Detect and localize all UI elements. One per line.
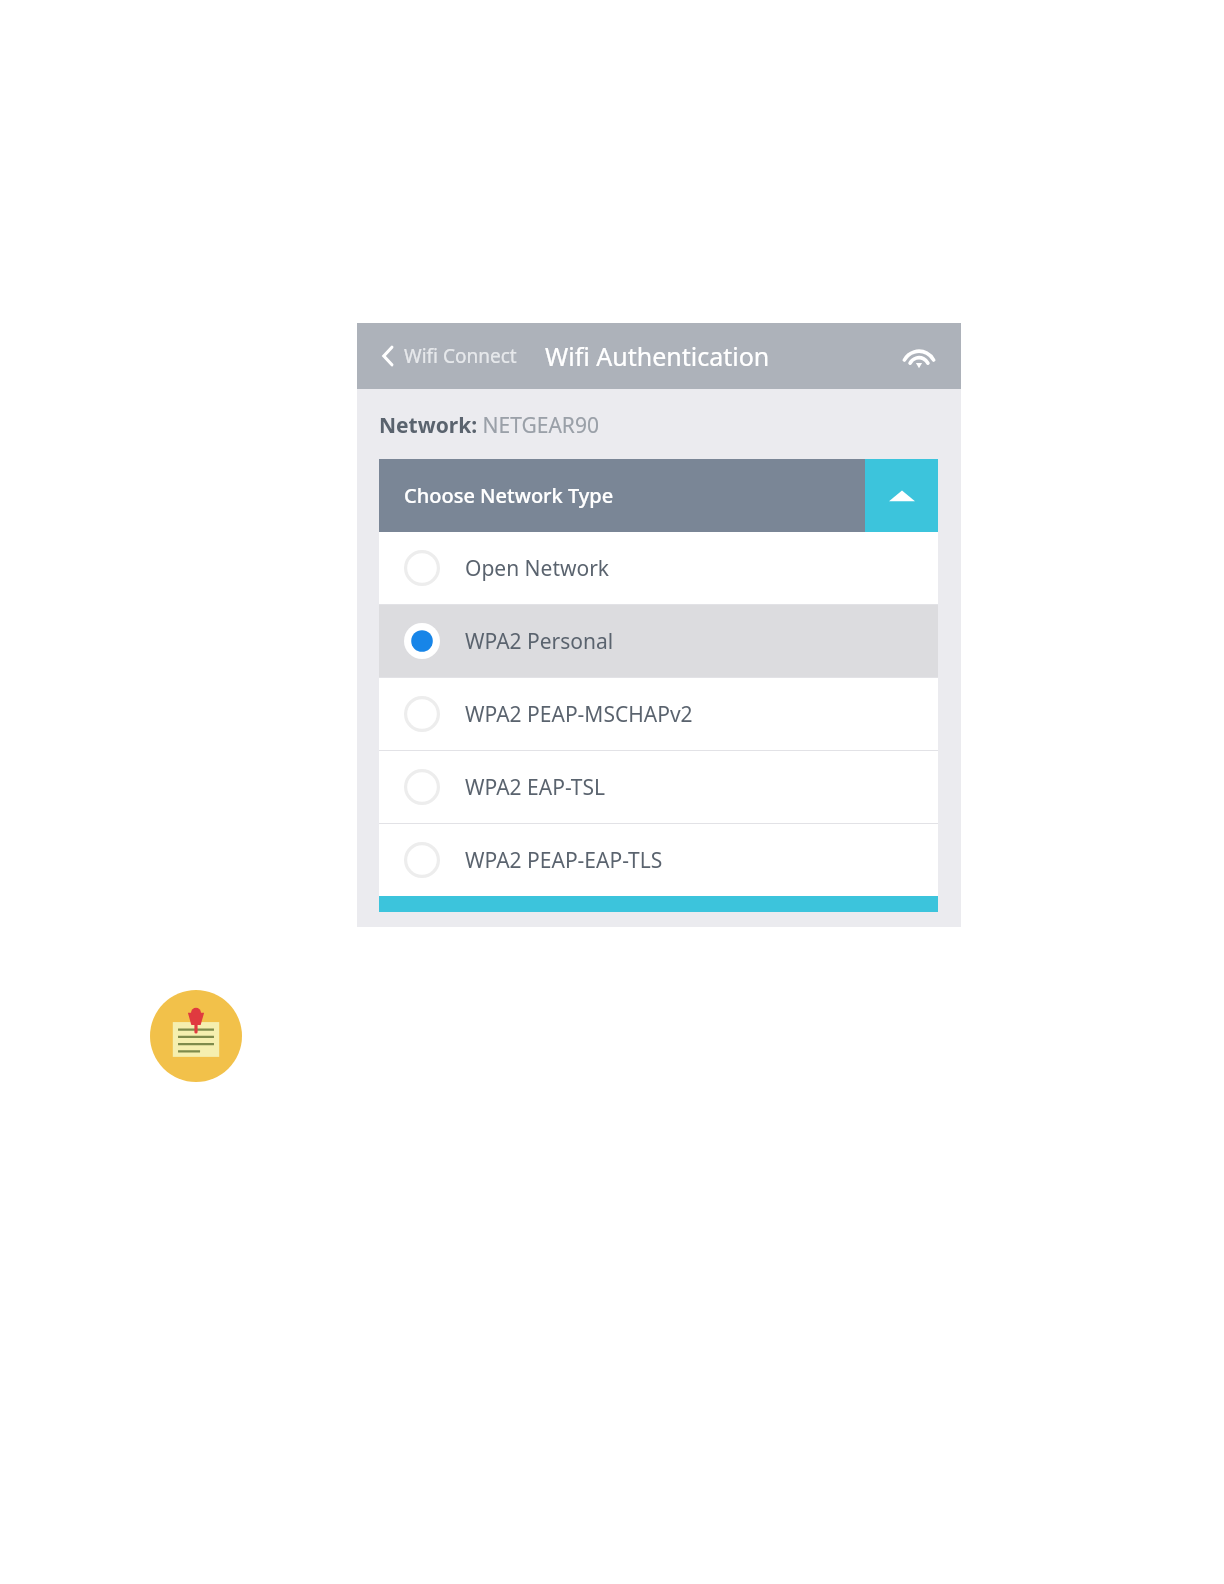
button[interactable]: WPA2 PEAP-MSCHAPv2 bbox=[379, 678, 938, 750]
staticText: WPA2 Personal bbox=[465, 627, 614, 656]
staticText: WPA2 PEAP-MSCHAPv2 bbox=[465, 700, 693, 729]
staticText: Choose Network Type bbox=[404, 482, 614, 509]
button[interactable]: Open Network bbox=[379, 532, 938, 604]
button[interactable]: Wifi signal bbox=[899, 336, 939, 376]
button[interactable]: Pinned note bbox=[150, 990, 242, 1082]
button[interactable]: Collapse network type list bbox=[865, 459, 938, 532]
button[interactable]: WPA2 PEAP-EAP-TLS bbox=[379, 824, 938, 896]
button[interactable]: WPA2 Personal bbox=[379, 605, 938, 677]
staticText: Open Network bbox=[465, 554, 610, 583]
staticText: WPA2 PEAP-EAP-TLS bbox=[465, 846, 663, 875]
staticText: WPA2 EAP-TSL bbox=[465, 773, 606, 802]
staticText: Wifi Authentication bbox=[545, 339, 770, 373]
button[interactable]: WPA2 EAP-TSL bbox=[379, 751, 938, 823]
staticText: Network: NETGEAR90 bbox=[379, 411, 599, 440]
button[interactable]: Wifi Connect bbox=[377, 337, 521, 375]
button[interactable]: Choose Network Type bbox=[379, 459, 865, 532]
staticText: Wifi Connect bbox=[404, 343, 517, 369]
